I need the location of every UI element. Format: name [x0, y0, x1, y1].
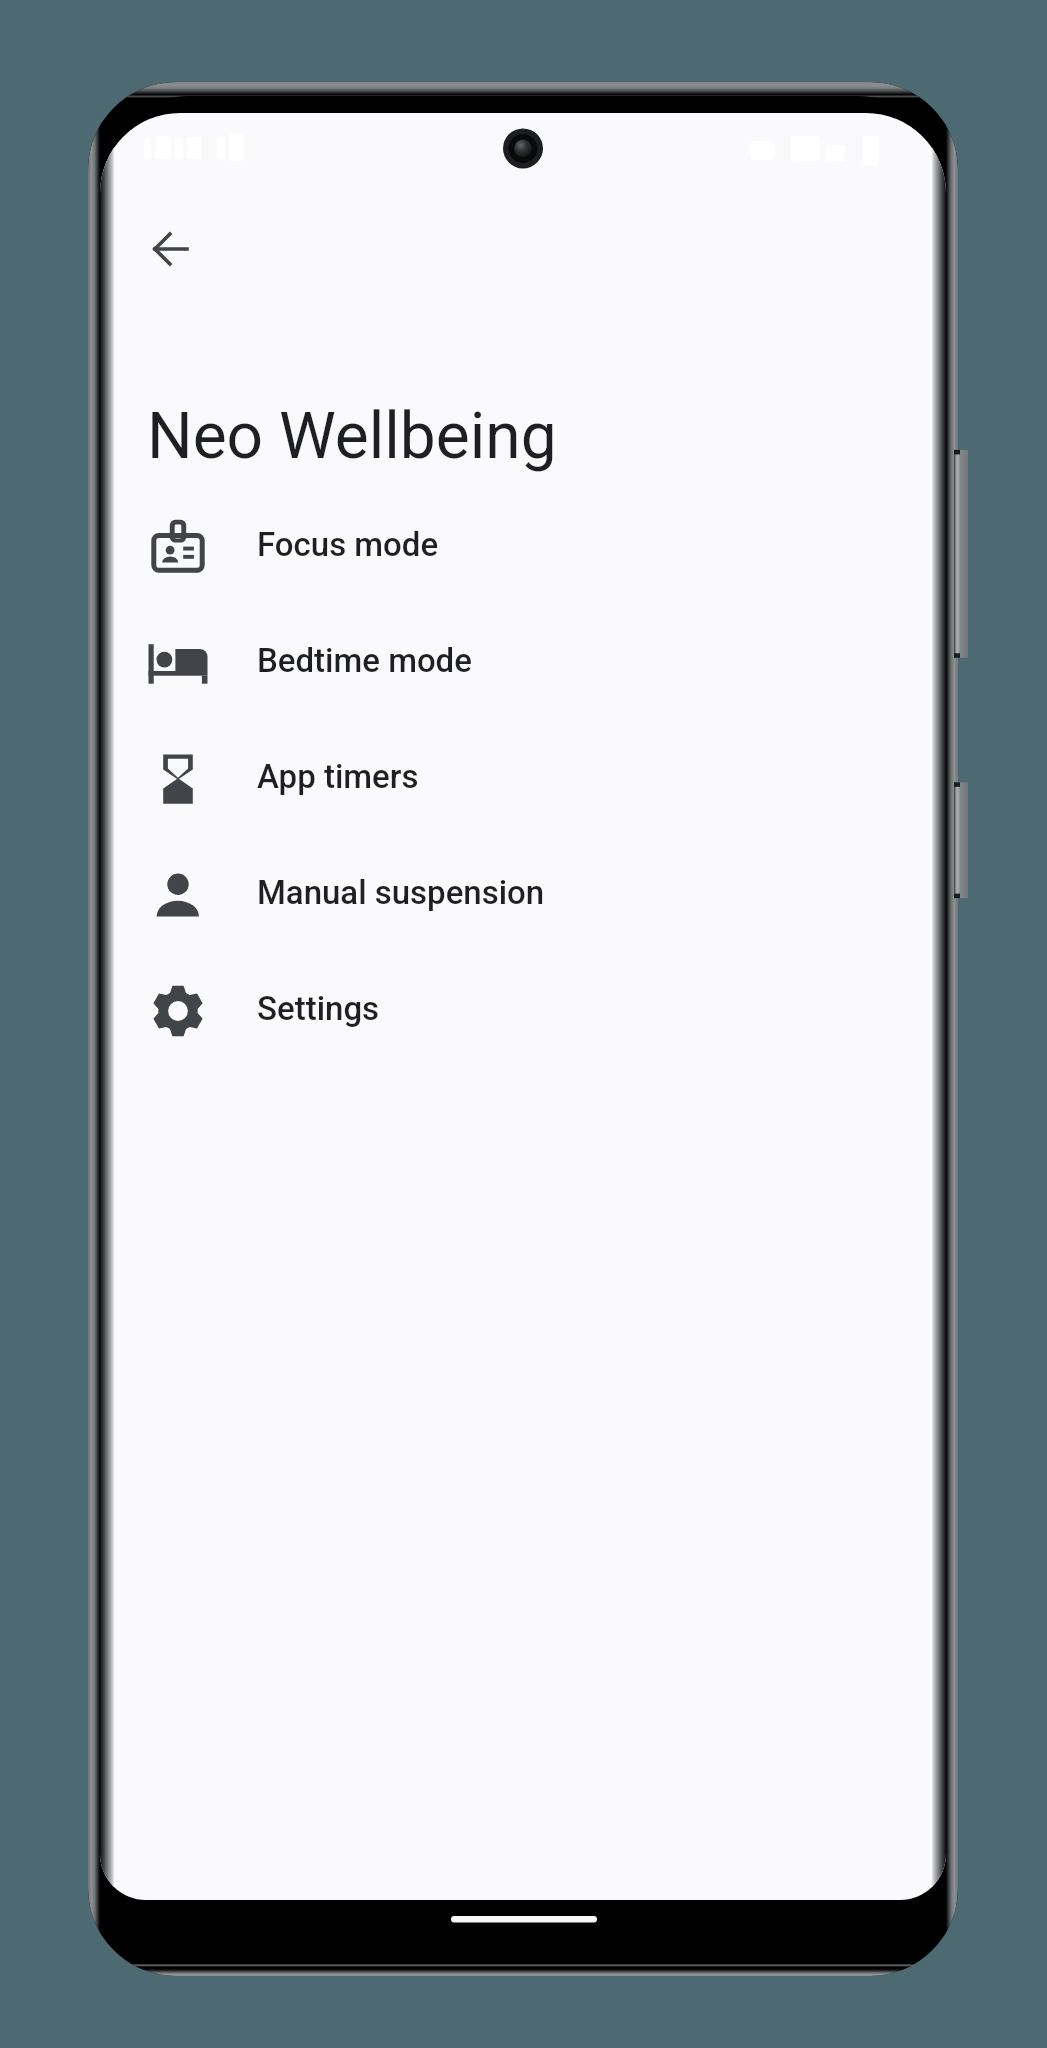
staticText: App timers — [257, 757, 419, 796]
button[interactable]: Manual suspension — [114, 840, 932, 944]
staticText: Bedtime mode — [257, 641, 472, 680]
button[interactable]: App timers — [114, 724, 932, 828]
staticText: Settings — [257, 989, 380, 1028]
button[interactable]: Bedtime mode — [114, 608, 932, 712]
button[interactable]: Focus mode — [114, 492, 932, 596]
staticText: Manual suspension — [257, 873, 545, 912]
button[interactable]: Settings — [114, 956, 932, 1060]
staticText: Focus mode — [257, 525, 439, 564]
button[interactable]: Back — [127, 205, 215, 293]
staticText: Neo Wellbeing — [147, 399, 557, 474]
